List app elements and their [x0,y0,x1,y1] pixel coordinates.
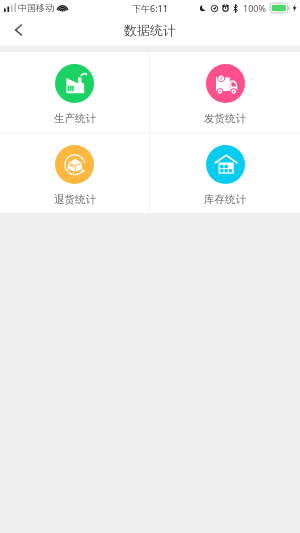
button[interactable]: 生产统计 [0,52,149,132]
staticText: 发货统计 [204,112,246,125]
staticText: 下午6:11 [132,2,168,14]
staticText: 数据统计 [124,22,176,38]
staticText: 中国移动 [18,2,54,13]
staticText: 生产统计 [54,112,96,125]
button[interactable]: 库存统计 [150,133,300,213]
button[interactable]: 发货统计 [150,52,300,132]
staticText: 退货统计 [54,193,96,206]
staticText: 100% [243,2,266,14]
button[interactable]: 退货统计 [0,133,149,213]
button[interactable]: Back [0,15,36,46]
staticText: 库存统计 [204,193,246,206]
